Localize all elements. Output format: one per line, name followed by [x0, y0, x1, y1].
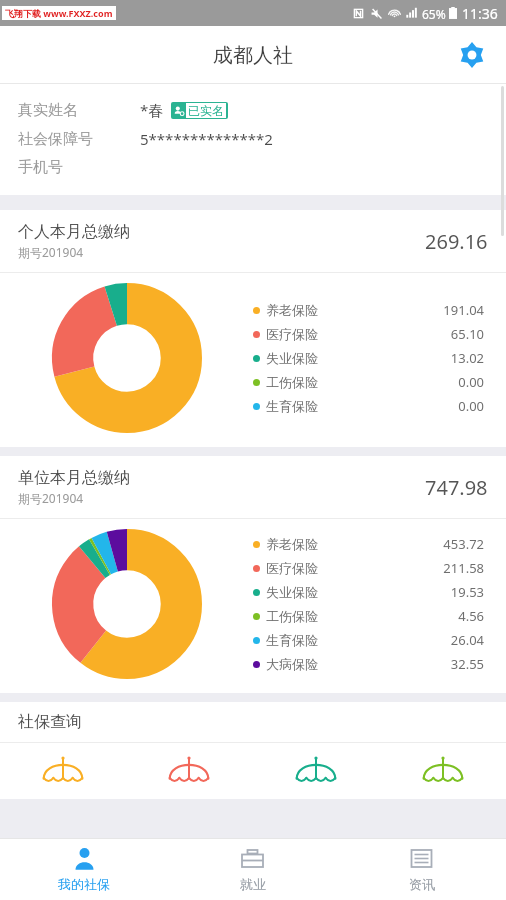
- staticText: 成都人社: [213, 43, 293, 68]
- button[interactable]: 工伤保险: [379, 753, 506, 799]
- staticText: 失业保险: [266, 584, 318, 600]
- button[interactable]: 资讯: [337, 838, 506, 900]
- staticText: 191.04: [443, 301, 484, 319]
- staticText: 医疗保险: [266, 560, 318, 576]
- button[interactable]: Settings: [452, 35, 492, 75]
- staticText: 资讯: [409, 876, 435, 892]
- other: 工伤保险: [420, 753, 466, 799]
- staticText: 个人本月总缴纳: [18, 222, 130, 242]
- staticText: 失业保险: [266, 350, 318, 366]
- staticText: 5**************2: [140, 129, 273, 149]
- staticText: 65%: [422, 6, 446, 22]
- staticText: 0.00: [458, 397, 484, 415]
- staticText: 211.58: [443, 559, 484, 577]
- staticText: 453.72: [443, 535, 484, 553]
- staticText: 生育保险: [266, 632, 318, 648]
- staticText: 单位本月总缴纳: [18, 468, 130, 488]
- staticText: 养老保险: [266, 302, 318, 318]
- staticText: 生育保险: [266, 398, 318, 414]
- button[interactable]: 我的社保: [0, 838, 168, 900]
- staticText: 32.55: [450, 655, 484, 673]
- staticText: 4.56: [458, 607, 484, 625]
- staticText: 社保查询: [18, 712, 82, 732]
- staticText: 65.10: [450, 325, 484, 343]
- staticText: 社会保障号: [18, 130, 140, 149]
- staticText: 手机号: [18, 158, 140, 177]
- other: 养老保险: [40, 753, 86, 799]
- staticText: 真实姓名: [18, 101, 140, 120]
- staticText: 飞翔下载 www.FXXZ.com: [5, 7, 113, 19]
- button[interactable]: 养老保险: [0, 753, 126, 799]
- button[interactable]: 医疗保险: [126, 753, 252, 799]
- staticText: 工伤保险: [266, 374, 318, 390]
- button[interactable]: 就业: [168, 838, 337, 900]
- staticText: 期号201904: [18, 244, 84, 260]
- staticText: 已实名: [188, 103, 224, 118]
- staticText: 养老保险: [266, 536, 318, 552]
- staticText: 11:36: [462, 4, 498, 23]
- staticText: 就业: [240, 876, 266, 892]
- other: 失业保险: [293, 753, 339, 799]
- staticText: 医疗保险: [266, 326, 318, 342]
- staticText: 19.53: [450, 583, 484, 601]
- staticText: 269.16: [425, 228, 488, 255]
- staticText: 大病保险: [266, 656, 318, 672]
- staticText: 我的社保: [58, 876, 110, 892]
- staticText: 13.02: [450, 349, 484, 367]
- staticText: 747.98: [425, 474, 488, 501]
- button[interactable]: 失业保险: [252, 753, 379, 799]
- staticText: *春: [140, 100, 164, 120]
- other: 医疗保险: [166, 753, 212, 799]
- staticText: 0.00: [458, 373, 484, 391]
- staticText: 26.04: [450, 631, 484, 649]
- staticText: 工伤保险: [266, 608, 318, 624]
- staticText: 期号201904: [18, 490, 84, 506]
